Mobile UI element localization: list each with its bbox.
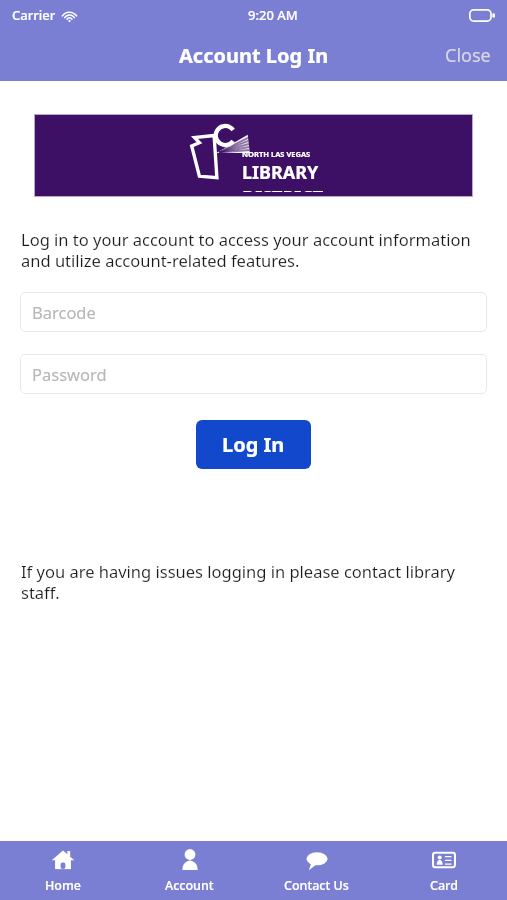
staticText: If you are having issues logging in plea… — [21, 560, 486, 604]
button[interactable]: Contact Us — [253, 841, 380, 900]
other: Battery — [469, 9, 495, 22]
button[interactable]: Password — [20, 354, 487, 394]
other: Contact Us — [305, 848, 329, 872]
button[interactable]: Close — [429, 33, 507, 78]
staticText: LIBRARY — [242, 160, 319, 185]
staticText: Carrier — [12, 6, 56, 24]
other: Wi-Fi — [62, 8, 77, 23]
button[interactable]: Barcode — [20, 292, 487, 332]
staticText: Password — [32, 363, 107, 385]
staticText: DISTRICT — [242, 185, 324, 192]
button[interactable]: Home — [0, 841, 126, 900]
staticText: Barcode — [32, 301, 96, 323]
staticText: Close — [445, 43, 491, 68]
staticText: Log in to your account to access your ac… — [21, 228, 486, 272]
staticText: Account — [165, 877, 214, 894]
other: Account — [178, 848, 202, 872]
staticText: Contact Us — [284, 877, 349, 894]
button[interactable]: Card — [380, 841, 507, 900]
staticText: Log In — [222, 431, 285, 458]
button[interactable]: Log In — [196, 420, 311, 469]
staticText: Home — [45, 877, 82, 894]
staticText: 9:20 AM — [248, 6, 298, 24]
staticText: Card — [430, 877, 458, 894]
other: North Las Vegas Library District logo — [184, 120, 324, 192]
other: Home — [51, 848, 75, 872]
other: Card — [432, 848, 456, 872]
staticText: Account Log In — [179, 42, 329, 69]
button[interactable]: Account — [126, 841, 253, 900]
staticText: NORTH LAS VEGAS — [242, 149, 311, 159]
